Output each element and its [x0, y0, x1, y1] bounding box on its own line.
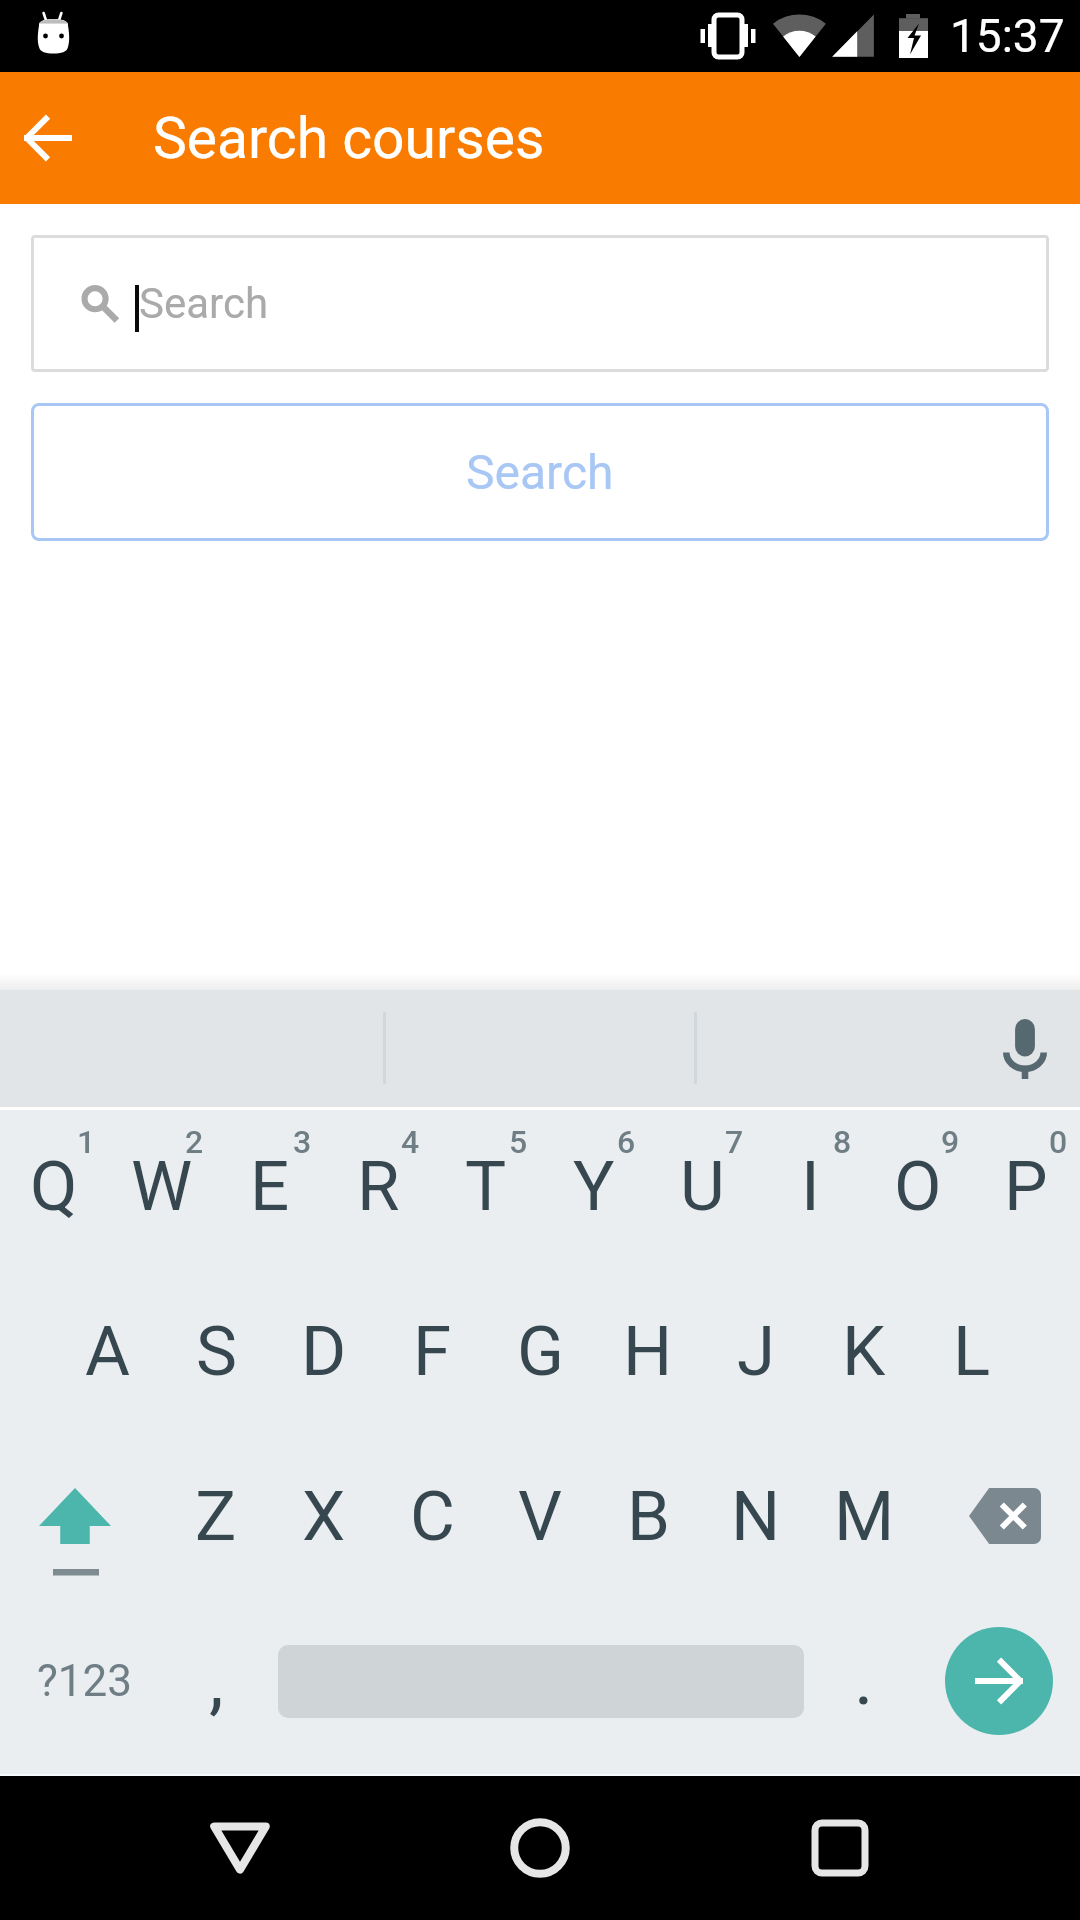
button[interactable]: M — [810, 1433, 918, 1599]
button[interactable]: Voice input — [981, 1007, 1069, 1091]
button[interactable]: A — [54, 1268, 162, 1434]
button[interactable]: N — [702, 1433, 810, 1599]
staticText: L — [953, 1311, 991, 1392]
button[interactable]: Q — [0, 1103, 108, 1269]
staticText: . — [854, 1635, 874, 1722]
button[interactable]: G — [486, 1268, 594, 1434]
staticText: 3 — [293, 1123, 312, 1161]
button[interactable]: Symbols — [0, 1598, 162, 1764]
button[interactable]: P — [972, 1103, 1080, 1269]
staticText: , — [209, 1637, 224, 1724]
staticText: Z — [195, 1476, 237, 1557]
staticText: I — [801, 1146, 820, 1227]
button[interactable]: Back — [150, 1776, 330, 1920]
staticText: V — [518, 1476, 562, 1557]
staticText: U — [680, 1146, 725, 1227]
staticText: B — [627, 1476, 670, 1557]
staticText: C — [410, 1476, 455, 1557]
button[interactable]: D — [270, 1268, 378, 1434]
staticText: F — [413, 1311, 452, 1392]
staticText: T — [465, 1146, 507, 1227]
button[interactable]: Z — [162, 1433, 270, 1599]
button[interactable]: S — [162, 1268, 270, 1434]
staticText: K — [842, 1311, 886, 1392]
staticText: 4 — [401, 1123, 420, 1161]
staticText: 2 — [185, 1123, 204, 1161]
staticText: Y — [573, 1146, 615, 1227]
button[interactable]: Navigate up — [0, 72, 96, 204]
button[interactable]: Backspace — [930, 1433, 1080, 1599]
button[interactable]: U — [648, 1103, 756, 1269]
staticText: N — [731, 1476, 781, 1557]
staticText: H — [623, 1311, 673, 1392]
button[interactable]: O — [864, 1103, 972, 1269]
staticText: O — [894, 1146, 942, 1227]
staticText: W — [131, 1146, 193, 1227]
staticText: 7 — [725, 1123, 744, 1161]
button[interactable]: C — [378, 1433, 486, 1599]
staticText: Q — [30, 1146, 78, 1227]
staticText: X — [302, 1476, 346, 1557]
staticText: J — [737, 1311, 776, 1392]
staticText: P — [1004, 1146, 1048, 1227]
button[interactable]: Search — [31, 403, 1049, 541]
button[interactable]: Recents — [750, 1776, 930, 1920]
button[interactable]: . — [810, 1595, 918, 1761]
button[interactable]: , — [162, 1597, 270, 1763]
staticText: E — [250, 1146, 290, 1227]
staticText: Search courses — [153, 105, 545, 172]
button[interactable]: X — [270, 1433, 378, 1599]
staticText: A — [85, 1311, 131, 1392]
button[interactable]: T — [432, 1103, 540, 1269]
button[interactable]: Home — [450, 1776, 630, 1920]
button[interactable]: J — [702, 1268, 810, 1434]
button[interactable]: B — [594, 1433, 702, 1599]
staticText: R — [357, 1146, 400, 1227]
staticText: D — [301, 1311, 347, 1392]
button[interactable]: R — [324, 1103, 432, 1269]
button[interactable]: V — [486, 1433, 594, 1599]
button[interactable]: W — [108, 1103, 216, 1269]
button[interactable]: L — [918, 1268, 1026, 1434]
staticText: 15:37 — [950, 9, 1065, 63]
staticText: 5 — [509, 1123, 528, 1161]
button[interactable]: K — [810, 1268, 918, 1434]
staticText: M — [834, 1476, 895, 1557]
staticText: 8 — [833, 1123, 852, 1161]
button[interactable]: Search — [31, 235, 1049, 372]
button[interactable]: E — [216, 1103, 324, 1269]
staticText: 0 — [1049, 1123, 1068, 1161]
button[interactable]: F — [378, 1268, 486, 1434]
button[interactable]: Y — [540, 1103, 648, 1269]
staticText: 9 — [941, 1123, 960, 1161]
button[interactable]: H — [594, 1268, 702, 1434]
staticText: G — [517, 1311, 564, 1392]
staticText: ?123 — [37, 1655, 132, 1707]
staticText: Search — [466, 444, 614, 500]
button[interactable]: Enter — [918, 1598, 1080, 1764]
staticText: Search — [139, 279, 269, 328]
button[interactable]: Shift — [0, 1433, 150, 1599]
staticText: S — [196, 1311, 237, 1392]
staticText: 6 — [617, 1123, 636, 1161]
button[interactable]: I — [756, 1103, 864, 1269]
staticText: 1 — [77, 1123, 96, 1161]
